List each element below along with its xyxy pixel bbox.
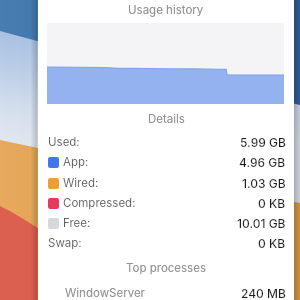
- staticText: 5.99 GB: [240, 135, 286, 150]
- staticText: 0 KB: [258, 196, 286, 211]
- staticText: Wired:: [63, 176, 99, 190]
- staticText: Usage history: [128, 3, 204, 17]
- button[interactable]: Wired:: [48, 174, 286, 192]
- button[interactable]: Free:: [48, 214, 286, 232]
- staticText: 4.96 GB: [239, 155, 286, 170]
- staticText: Compressed:: [63, 196, 136, 210]
- staticText: 0 KB: [258, 236, 286, 251]
- button[interactable]: Used:: [48, 133, 286, 151]
- staticText: Details: [148, 112, 185, 126]
- staticText: Swap:: [48, 236, 82, 250]
- button[interactable]: App:: [48, 153, 286, 171]
- button[interactable]: Compressed:: [48, 194, 286, 212]
- staticText: 1.03 GB: [242, 176, 286, 191]
- staticText: Top processes: [126, 261, 206, 275]
- staticText: WindowServer: [65, 286, 145, 300]
- button[interactable]: Swap:: [48, 234, 286, 252]
- staticText: Used:: [48, 135, 80, 149]
- staticText: 240 MB: [241, 286, 286, 300]
- staticText: 10.01 GB: [237, 216, 286, 231]
- button[interactable]: WindowServer: [65, 284, 286, 300]
- staticText: Free:: [63, 216, 91, 230]
- staticText: App:: [63, 155, 89, 169]
